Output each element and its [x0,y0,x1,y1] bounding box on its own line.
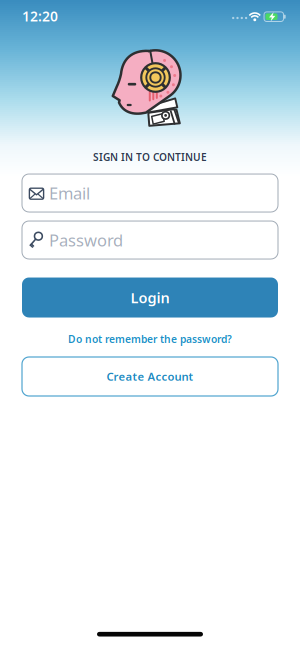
staticText: 12:20 [22,5,58,27]
staticText: Create Account [106,367,193,386]
staticText: Login [130,286,169,309]
button[interactable]: Login [22,277,278,317]
staticText: Email [49,180,90,206]
button[interactable]: Password [22,221,278,259]
staticText: Password [49,227,123,253]
button[interactable]: Do not remember the password? [68,331,232,347]
button[interactable]: Create Account [22,357,278,396]
staticText: SIGN IN TO CONTINUE [93,149,207,165]
staticText: Do not remember the password? [68,331,232,347]
button[interactable]: Email [22,174,278,212]
